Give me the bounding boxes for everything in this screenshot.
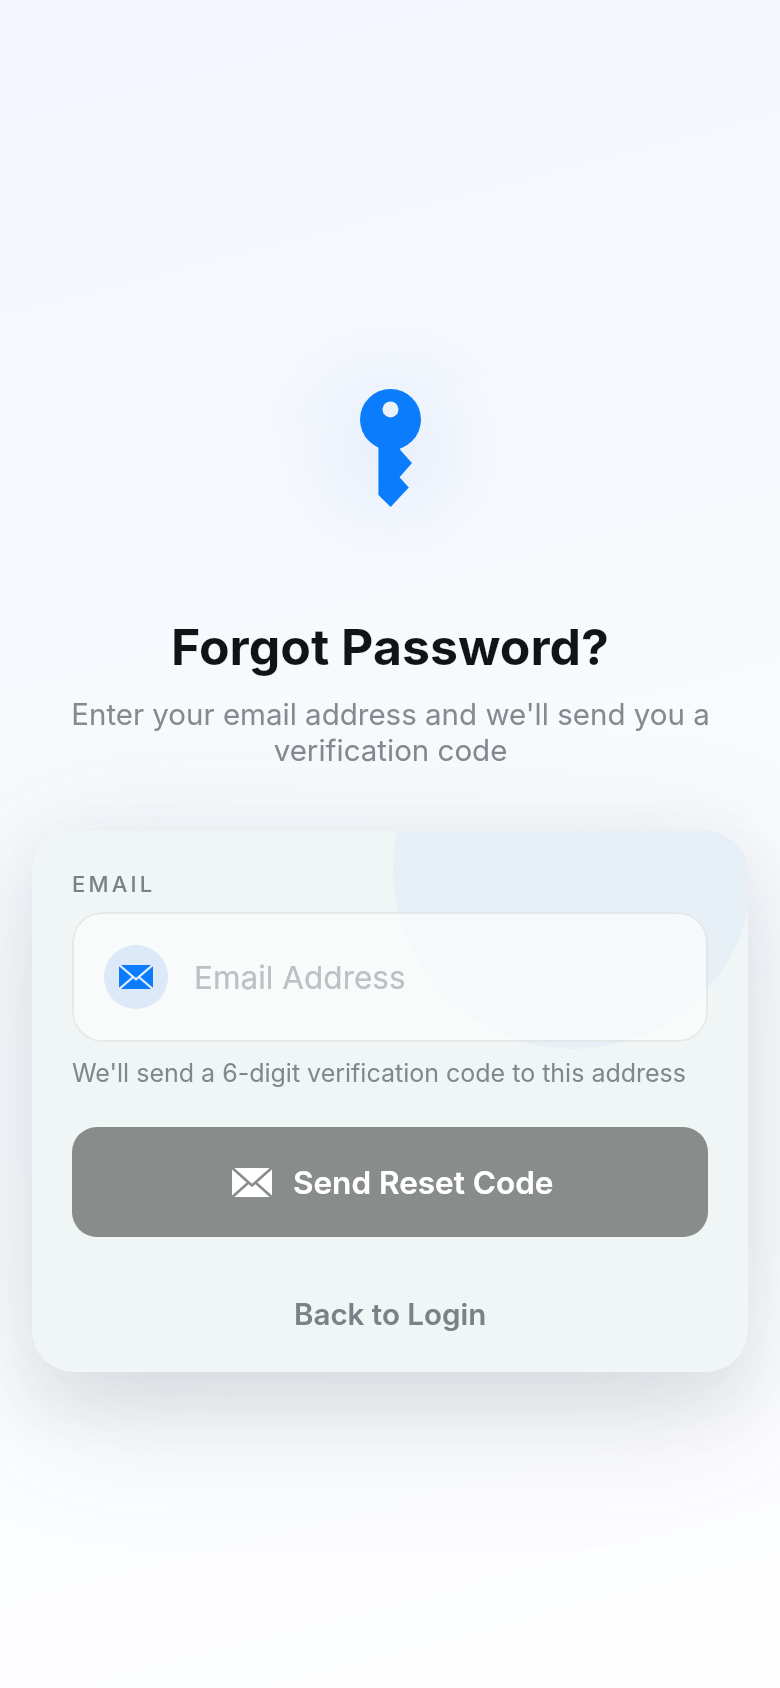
button[interactable]: Send Reset Code [72,1127,708,1237]
staticText: EMAIL [72,871,156,898]
staticText: We'll send a 6-digit verification code t… [72,1058,687,1088]
staticText: Send Reset Code [293,1163,554,1201]
staticText: Back to Login [294,1296,487,1332]
staticText: Email Address [194,958,406,996]
button[interactable]: Back to Login [72,1282,708,1346]
staticText: Forgot Password? [171,617,610,677]
other: Password key [360,389,421,507]
staticText: Enter your email address and we'll send … [71,696,710,768]
button[interactable]: Email Address [72,912,708,1042]
